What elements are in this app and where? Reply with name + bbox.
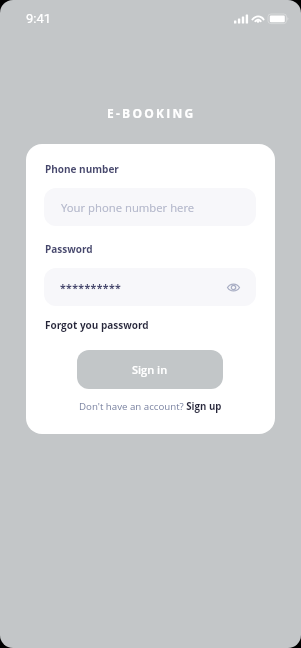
staticText: E-BOOKING xyxy=(107,105,196,121)
staticText: ********** xyxy=(60,281,122,295)
staticText: Phone number xyxy=(45,162,119,176)
button[interactable]: Don't have an account? Sign up xyxy=(26,397,275,415)
button[interactable]: Your phone number here xyxy=(44,188,256,226)
button[interactable]: Sign in xyxy=(77,350,223,389)
staticText: Password xyxy=(45,242,93,256)
button[interactable]: Forgot you password xyxy=(45,318,149,332)
staticText: Sign in xyxy=(132,362,168,377)
staticText: Your phone number here xyxy=(61,200,195,215)
staticText: 9:41 xyxy=(26,11,52,26)
button[interactable]: Show password xyxy=(222,276,244,298)
button[interactable]: ********** xyxy=(44,268,256,306)
staticText: Don't have an account? Sign up xyxy=(79,400,222,413)
